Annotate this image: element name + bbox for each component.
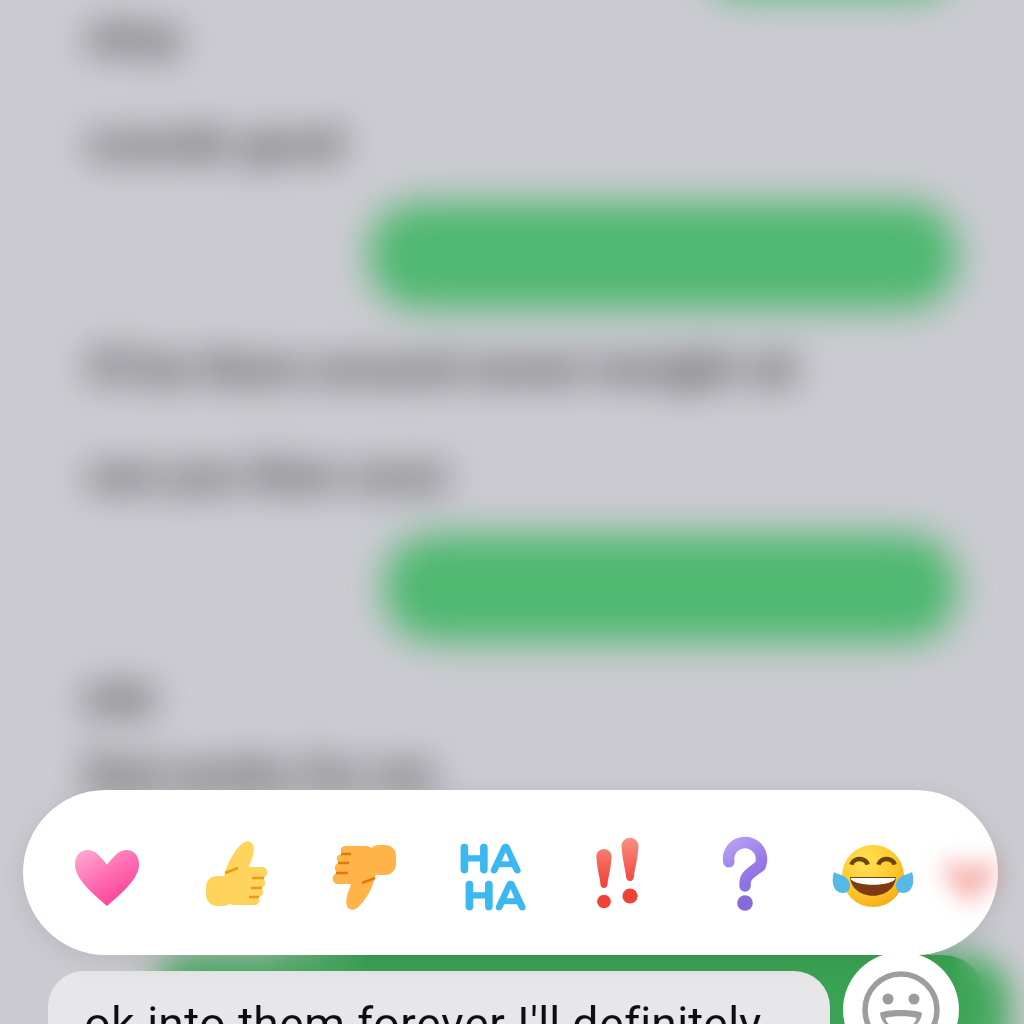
button[interactable]: Open emoji picker xyxy=(826,939,976,1024)
button[interactable]: React with question xyxy=(663,790,791,955)
button[interactable]: React with thumbs down xyxy=(279,790,407,955)
button[interactable]: React with exclamation xyxy=(535,790,663,955)
button[interactable]: Message: ok into them forever I'll defin… xyxy=(48,956,828,1024)
button[interactable]: React with love xyxy=(23,790,151,955)
button[interactable]: More reactions xyxy=(919,790,998,955)
button[interactable]: React with laughing xyxy=(791,790,919,955)
button[interactable]: React with thumbs up xyxy=(151,790,279,955)
button[interactable]: React with haha xyxy=(407,790,535,955)
